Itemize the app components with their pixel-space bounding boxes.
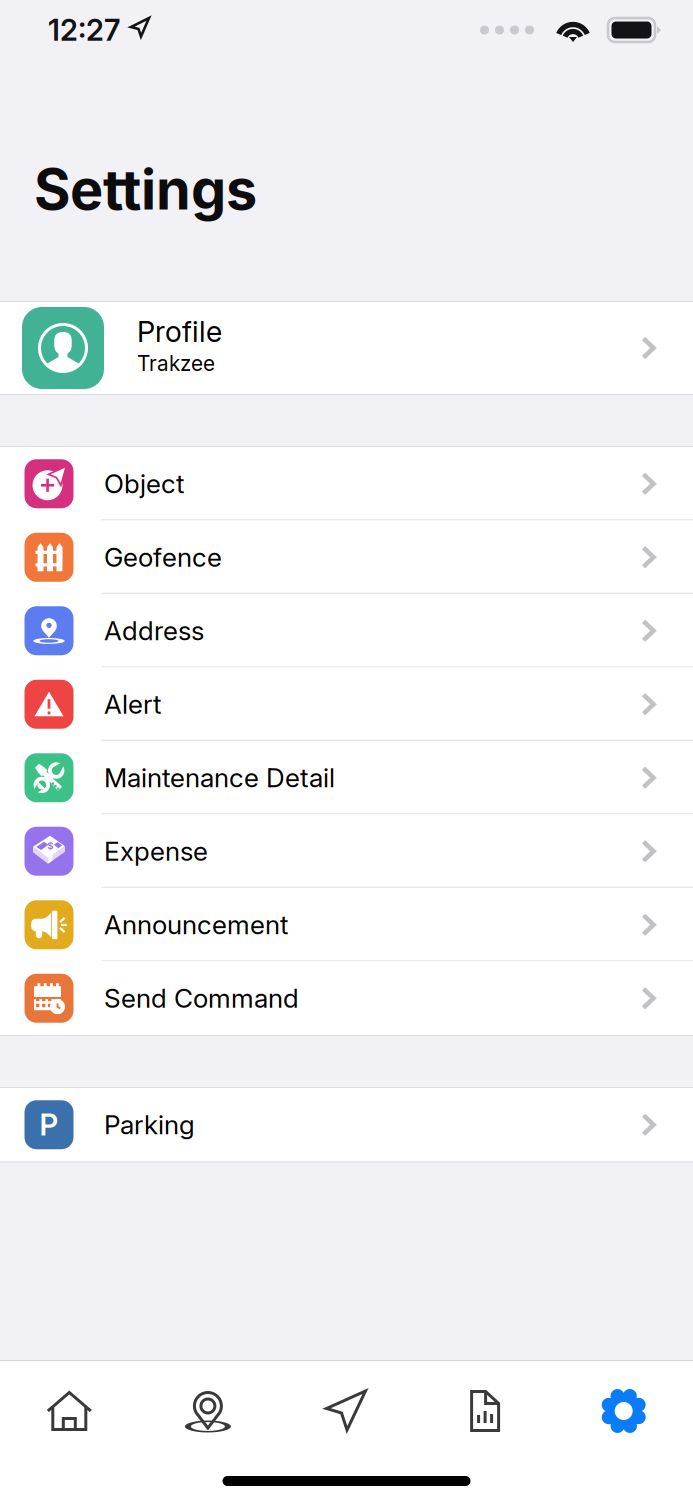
- staticText: Geofence: [104, 541, 222, 573]
- button[interactable]: $: [0, 814, 693, 888]
- button[interactable]: Home: [0, 1361, 139, 1461]
- staticText: Maintenance Detail: [104, 762, 335, 793]
- button[interactable]: Address: [0, 594, 693, 667]
- button[interactable]: Navigate: [277, 1361, 416, 1461]
- staticText: Object: [104, 468, 184, 499]
- button[interactable]: P: [0, 1088, 693, 1161]
- button[interactable]: Geofence: [0, 520, 693, 594]
- staticText: Alert: [104, 688, 161, 720]
- button[interactable]: Places: [139, 1361, 277, 1461]
- button[interactable]: Maintenance Detail: [0, 741, 693, 814]
- button[interactable]: Alert: [0, 667, 693, 741]
- staticText: Settings: [34, 156, 257, 223]
- staticText: Parking: [104, 1109, 195, 1140]
- staticText: Expense: [104, 835, 208, 867]
- staticText: 12:27: [48, 12, 120, 48]
- staticText: Address: [104, 615, 204, 646]
- button[interactable]: Settings: [554, 1361, 693, 1461]
- button[interactable]: Announcement: [0, 888, 693, 961]
- staticText: Send Command: [104, 982, 299, 1014]
- staticText: Announcement: [104, 909, 288, 940]
- staticText: Profile: [137, 314, 222, 349]
- button[interactable]: Send Command: [0, 961, 693, 1035]
- button[interactable]: Object: [0, 447, 693, 520]
- staticText: Trakzee: [137, 351, 215, 376]
- button[interactable]: Reports: [416, 1361, 554, 1461]
- staticText: $: [47, 840, 53, 852]
- staticText: P: [39, 1107, 58, 1142]
- button[interactable]: Profile: [0, 302, 693, 394]
